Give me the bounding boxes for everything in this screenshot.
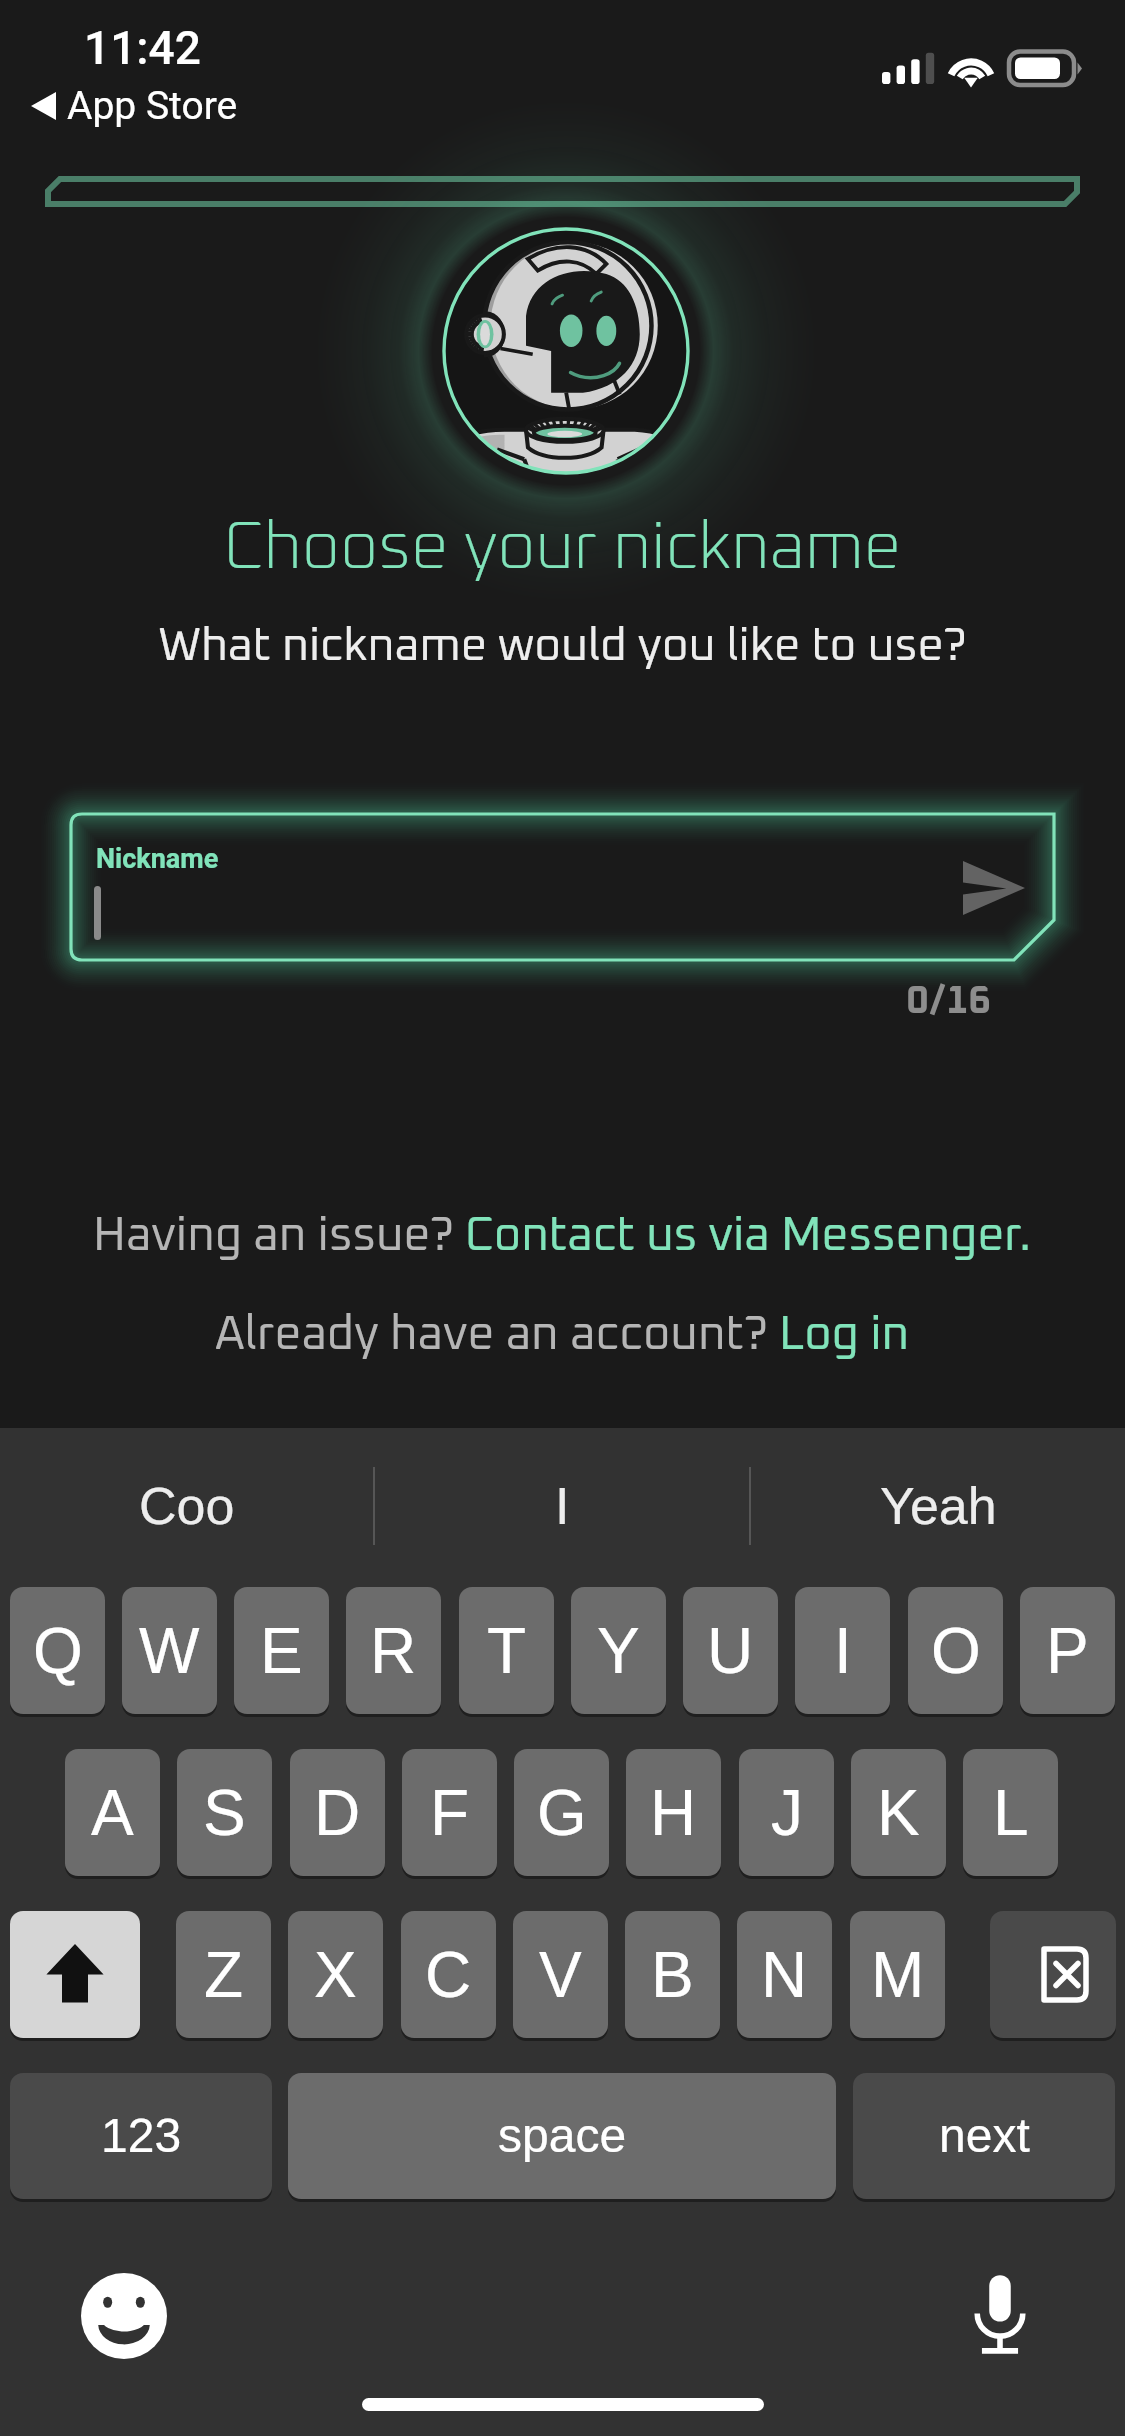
staticText: P xyxy=(1046,1615,1089,1687)
button[interactable]: H xyxy=(626,1749,721,1876)
staticText: What nickname would you like to use? xyxy=(0,624,1125,670)
staticText: O xyxy=(931,1615,981,1687)
button[interactable]: F xyxy=(402,1749,497,1876)
staticText: 123 xyxy=(101,2109,182,2163)
button[interactable]: 123 xyxy=(10,2073,272,2199)
staticText: L xyxy=(993,1777,1029,1849)
staticText: T xyxy=(487,1615,527,1687)
button[interactable]: E xyxy=(234,1587,329,1714)
staticText: K xyxy=(877,1777,920,1849)
button[interactable]: P xyxy=(1020,1587,1115,1714)
staticText: Contact us via Messenger. xyxy=(465,1213,1032,1260)
button[interactable]: Z xyxy=(176,1911,271,2038)
staticText: D xyxy=(314,1777,361,1849)
button[interactable]: M xyxy=(850,1911,945,2038)
button[interactable]: G xyxy=(514,1749,609,1876)
button[interactable]: O xyxy=(908,1587,1003,1714)
button[interactable]: Emoji xyxy=(81,2273,167,2359)
staticText: M xyxy=(871,1939,925,2011)
staticText: E xyxy=(260,1615,303,1687)
button[interactable]: next xyxy=(853,2073,1115,2199)
staticText: Y xyxy=(597,1615,640,1687)
button[interactable]: Dictate xyxy=(957,2270,1043,2356)
staticText: X xyxy=(314,1939,357,2011)
staticText: Having an issue? xyxy=(93,1213,465,1260)
button[interactable]: Back to App Store xyxy=(31,83,238,129)
staticText: 11:42 xyxy=(84,21,201,75)
button[interactable]: Coo xyxy=(0,1450,373,1562)
staticText: Choose your nickname xyxy=(0,516,1125,582)
button[interactable]: Backspace xyxy=(990,1911,1116,2038)
staticText: Yeah xyxy=(880,1477,997,1535)
staticText: Q xyxy=(33,1615,83,1687)
button[interactable]: Shift xyxy=(10,1911,140,2038)
button[interactable]: Already have an account? xyxy=(215,1312,910,1359)
button[interactable]: B xyxy=(625,1911,720,2038)
staticText: V xyxy=(539,1939,582,2011)
button[interactable]: Q xyxy=(10,1587,105,1714)
button[interactable]: W xyxy=(122,1587,217,1714)
staticText: next xyxy=(939,2109,1030,2163)
button[interactable]: K xyxy=(851,1749,946,1876)
button[interactable]: I xyxy=(795,1587,890,1714)
button[interactable]: D xyxy=(290,1749,385,1876)
staticText: S xyxy=(203,1777,246,1849)
button[interactable]: T xyxy=(459,1587,554,1714)
staticText: J xyxy=(771,1777,803,1849)
button[interactable]: V xyxy=(513,1911,608,2038)
button[interactable]: Y xyxy=(571,1587,666,1714)
button[interactable]: I xyxy=(375,1450,749,1562)
staticText: F xyxy=(430,1777,470,1849)
button[interactable]: Submit nickname xyxy=(933,838,1055,938)
staticText: App Store xyxy=(67,83,238,129)
staticText: U xyxy=(707,1615,754,1687)
button[interactable]: X xyxy=(288,1911,383,2038)
staticText: Nickname xyxy=(96,843,219,875)
staticText: space xyxy=(498,2109,627,2163)
button[interactable]: J xyxy=(739,1749,834,1876)
staticText: H xyxy=(650,1777,697,1849)
staticText: Coo xyxy=(139,1477,235,1535)
staticText: Z xyxy=(204,1939,244,2011)
staticText: W xyxy=(139,1615,200,1687)
staticText: I xyxy=(555,1477,570,1535)
button[interactable]: S xyxy=(177,1749,272,1876)
button[interactable]: Yeah xyxy=(751,1450,1125,1562)
button[interactable]: space xyxy=(288,2073,836,2199)
staticText: Already have an account? xyxy=(215,1312,779,1359)
staticText: C xyxy=(425,1939,472,2011)
staticText: B xyxy=(651,1939,694,2011)
button[interactable]: L xyxy=(963,1749,1058,1876)
button[interactable]: N xyxy=(737,1911,832,2038)
staticText: N xyxy=(761,1939,808,2011)
button[interactable]: Having an issue? xyxy=(93,1213,1032,1260)
staticText: G xyxy=(537,1777,587,1849)
button[interactable]: R xyxy=(346,1587,441,1714)
button[interactable]: C xyxy=(401,1911,496,2038)
staticText: 0/16 xyxy=(0,982,991,1021)
staticText: R xyxy=(370,1615,417,1687)
staticText: Log in xyxy=(779,1312,910,1359)
button[interactable]: A xyxy=(65,1749,160,1876)
staticText: A xyxy=(91,1777,134,1849)
staticText: I xyxy=(834,1615,852,1687)
button[interactable]: U xyxy=(683,1587,778,1714)
